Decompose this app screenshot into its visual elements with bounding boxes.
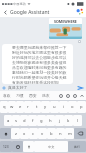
staticText: 要去哪里玩呢我来帮你推荐一下附近好玩的地方吧这里有很多很好的选择可以去公园散步也… [12, 45, 70, 84]
button[interactable]: a [4, 115, 12, 126]
button[interactable]: v [38, 128, 47, 139]
staticText: w [10, 104, 14, 110]
staticText: n [59, 131, 62, 137]
button[interactable]: j [55, 115, 64, 126]
button[interactable]: d [20, 115, 28, 126]
staticText: SOMEWHERE [54, 19, 77, 24]
staticText: v [41, 131, 44, 137]
staticText: y [44, 104, 47, 110]
button[interactable]: 洗衣 [39, 91, 52, 100]
button[interactable] [23, 141, 34, 152]
button[interactable]: Settings [57, 92, 64, 99]
button[interactable]: 123 [0, 141, 12, 152]
button[interactable]: Clipboard [64, 92, 71, 99]
staticText: Google Assistant [10, 9, 50, 16]
staticText: 换行 [74, 145, 80, 149]
button[interactable]: l [73, 115, 82, 126]
staticText: f [32, 118, 34, 124]
button[interactable]: w [8, 101, 16, 113]
staticText: o [71, 104, 74, 110]
button[interactable]: 要去哪里玩呢我来帮你推荐一下附近好玩的地方吧这里有很多很好的选择可以去公园散步也… [2, 44, 73, 84]
staticText: a [7, 118, 10, 124]
staticText: q [3, 104, 6, 110]
button[interactable]: y [41, 101, 50, 113]
button[interactable]: f [28, 115, 37, 126]
button[interactable]: b [47, 128, 56, 139]
staticText: b [50, 131, 53, 137]
staticText: s [15, 118, 18, 124]
staticText: d [23, 118, 26, 124]
button[interactable]: c [29, 128, 38, 139]
staticText: z [15, 131, 17, 137]
staticText: 喜欢 [3, 93, 11, 98]
staticText: p [80, 104, 83, 110]
staticText: e [19, 104, 22, 110]
staticText: 真是太好了 [8, 85, 28, 90]
button[interactable]: m [65, 128, 74, 139]
button[interactable]: Send [75, 84, 84, 91]
staticText: l [77, 118, 79, 124]
staticText: m [68, 131, 72, 137]
staticText: j [59, 118, 61, 124]
button[interactable] [12, 141, 23, 152]
button[interactable]: u [50, 101, 59, 113]
button[interactable]: Assistant [74, 7, 85, 17]
button[interactable]: i [59, 101, 68, 113]
button[interactable]: Back [0, 7, 10, 17]
staticText: i [63, 104, 65, 110]
staticText: 123 [3, 145, 9, 149]
button[interactable]: g [37, 115, 46, 126]
staticText: 中文 [48, 145, 55, 149]
staticText: h [49, 118, 52, 124]
staticText: t [36, 104, 38, 110]
button[interactable]: q [0, 101, 8, 113]
button[interactable]: t [32, 101, 41, 113]
button[interactable]: Translate [71, 92, 78, 99]
button[interactable]: z [11, 128, 20, 139]
button[interactable]: 西安 [26, 91, 39, 100]
button[interactable]: 中文 [34, 141, 68, 152]
button[interactable]: r [24, 101, 32, 113]
staticText: 西安 [29, 93, 37, 98]
staticText: c [32, 131, 35, 137]
button[interactable] [74, 128, 86, 139]
button[interactable]: Expand [78, 92, 85, 99]
button[interactable]: Add attachment [0, 84, 8, 91]
button[interactable]: k [64, 115, 73, 126]
staticText: 习惯 [16, 93, 24, 98]
staticText: u [53, 104, 56, 110]
button[interactable] [0, 128, 11, 139]
button[interactable]: x [20, 128, 29, 139]
staticText: k [67, 118, 70, 124]
staticText: g [40, 118, 43, 124]
button[interactable]: o [68, 101, 77, 113]
button[interactable]: p [77, 101, 86, 113]
button[interactable]: n [56, 128, 65, 139]
button[interactable]: s [12, 115, 20, 126]
button[interactable]: e [16, 101, 24, 113]
staticText: 中国移动 [13, 2, 26, 6]
staticText: x [23, 131, 26, 137]
button[interactable]: 喜欢 [1, 91, 13, 100]
button[interactable]: 换行 [68, 141, 86, 152]
button[interactable]: Somewhere travel card [49, 18, 82, 39]
button[interactable]: 习惯 [13, 91, 26, 100]
staticText: 洗衣 [42, 93, 50, 98]
staticText: r [27, 104, 29, 110]
button[interactable]: h [46, 115, 55, 126]
